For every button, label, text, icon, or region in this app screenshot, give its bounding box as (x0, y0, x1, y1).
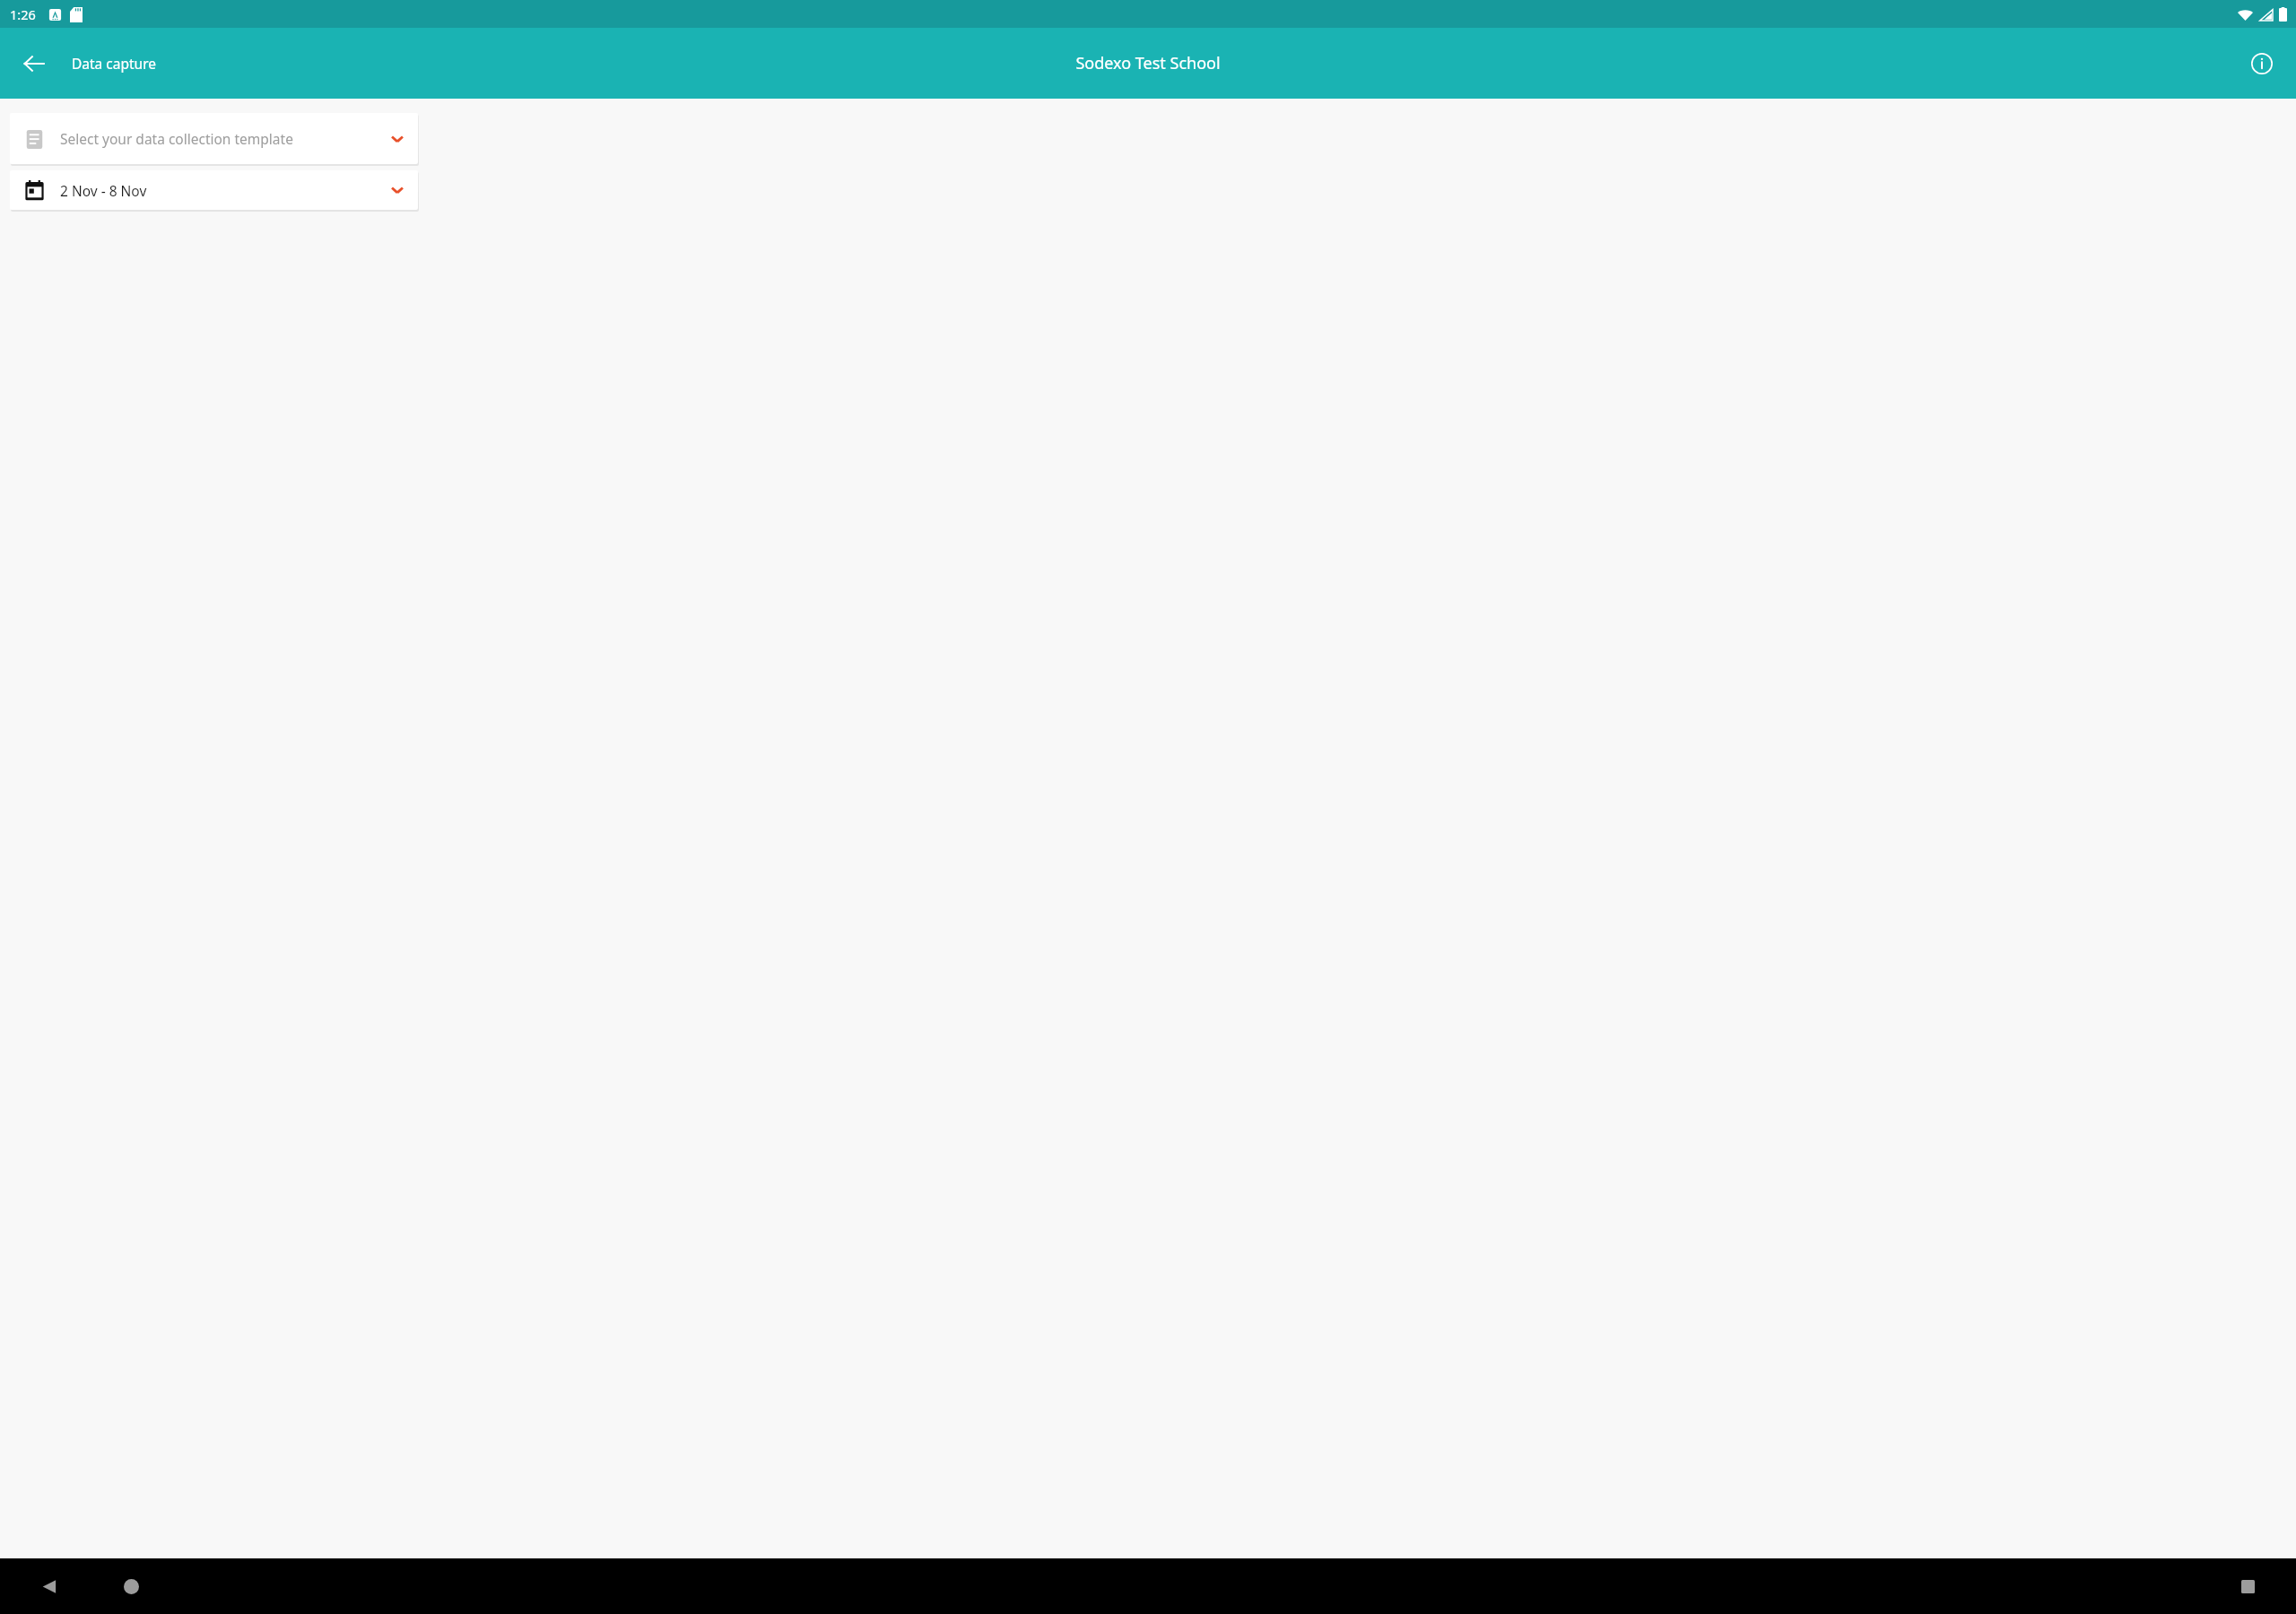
button[interactable]: Back (13, 42, 56, 85)
button[interactable]: Select date range (10, 170, 418, 210)
button[interactable]: Back (27, 1565, 70, 1608)
button[interactable]: Select your data collection template (10, 113, 418, 164)
staticText: 2 Nov - 8 Nov (60, 181, 389, 200)
staticText: Select your data collection template (60, 129, 389, 148)
button[interactable]: Home (109, 1565, 152, 1608)
button[interactable]: Recent apps (2226, 1565, 2269, 1608)
staticText: Sodexo Test School (1075, 52, 1221, 74)
button[interactable]: Data capture (72, 54, 157, 73)
button[interactable]: Information (2240, 42, 2283, 85)
staticText: 1:26 (10, 5, 36, 23)
